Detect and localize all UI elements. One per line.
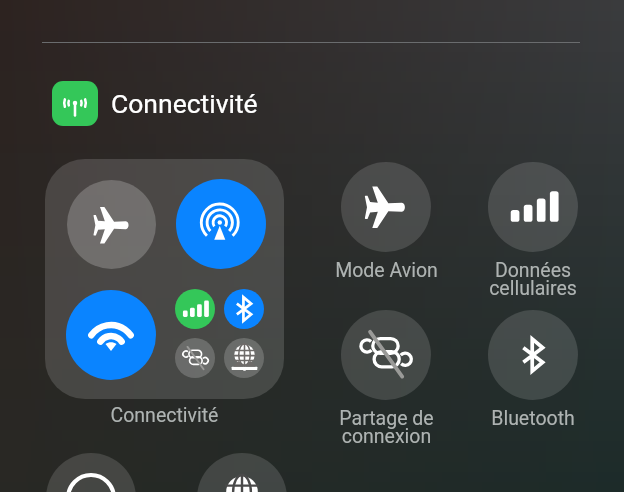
button[interactable]: Localisation [46,453,136,492]
button[interactable]: Bluetooth [463,310,603,430]
button[interactable]: Mode Avion [67,180,156,269]
button[interactable]: Mode Avion [316,162,456,282]
button[interactable]: VPN [197,453,287,492]
button[interactable]: VPN [224,338,264,378]
staticText: Connectivité [111,88,258,119]
other: Mode Avion [341,162,431,252]
staticText: Bluetooth [491,407,575,430]
staticText: Données cellulaires [489,259,577,300]
button[interactable]: Connectivité [52,81,258,126]
button[interactable]: Données cellulaires [175,289,215,329]
button[interactable]: Partage de connexion [316,310,456,448]
other: Partage de connexion [341,310,431,400]
button[interactable]: Bluetooth [224,289,264,329]
button[interactable]: Wi-Fi [66,290,156,380]
button[interactable]: AirDrop [176,179,266,269]
staticText: Connectivité [45,404,284,427]
button[interactable]: Partage de connexion [175,338,215,378]
staticText: Partage de connexion [339,407,434,448]
other: Bluetooth [488,310,578,400]
other: Données cellulaires [488,162,578,252]
button[interactable]: Données cellulaires [463,162,603,300]
staticText: Mode Avion [335,259,438,282]
button[interactable]: Mode Avion [45,159,284,399]
